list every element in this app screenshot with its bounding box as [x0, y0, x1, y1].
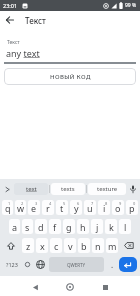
- button[interactable]: h: [77, 219, 89, 234]
- staticText: 7: [91, 201, 94, 206]
- staticText: o: [115, 202, 121, 214]
- staticText: 6: [77, 201, 80, 206]
- button[interactable]: p: [126, 200, 138, 215]
- staticText: l: [124, 221, 127, 233]
- button[interactable]: z: [22, 238, 34, 253]
- staticText: i: [103, 202, 106, 214]
- button[interactable]: m: [106, 238, 118, 253]
- staticText: p: [129, 202, 135, 214]
- staticText: h: [80, 221, 86, 233]
- staticText: 8: [105, 201, 108, 206]
- staticText: a: [12, 221, 18, 233]
- button[interactable]: [119, 257, 137, 272]
- staticText: 1: [8, 201, 11, 206]
- button[interactable]: r: [42, 200, 54, 215]
- button[interactable]: c: [50, 238, 62, 253]
- staticText: y: [74, 202, 79, 214]
- button[interactable]: w: [15, 200, 26, 215]
- staticText: r: [46, 202, 50, 214]
- staticText: d: [38, 221, 44, 233]
- button[interactable]: o: [112, 200, 124, 215]
- staticText: g: [66, 221, 72, 233]
- staticText: .: [111, 259, 114, 270]
- staticText: u: [87, 202, 93, 214]
- button[interactable]: g: [63, 219, 75, 234]
- button[interactable]: n: [92, 238, 104, 253]
- button[interactable]: ?123: [2, 255, 21, 274]
- staticText: c: [54, 240, 59, 252]
- button[interactable]: t: [56, 200, 68, 215]
- button[interactable]: [63, 280, 77, 294]
- staticText: Текст: [7, 39, 20, 46]
- staticText: k: [109, 221, 114, 233]
- button[interactable]: QWERTY: [49, 257, 104, 272]
- button[interactable]: b: [78, 238, 90, 253]
- staticText: 0: [133, 201, 136, 206]
- staticText: ?123: [6, 261, 18, 268]
- button[interactable]: any text: [6, 47, 40, 59]
- staticText: t: [60, 202, 64, 214]
- button[interactable]: k: [105, 219, 117, 234]
- staticText: 5: [63, 201, 66, 206]
- staticText: f: [53, 221, 57, 233]
- staticText: Текст: [25, 15, 46, 26]
- button[interactable]: f: [49, 219, 61, 234]
- button[interactable]: [119, 236, 139, 255]
- button[interactable]: НОВЫЙ КОД: [4, 68, 136, 85]
- button[interactable]: u: [84, 200, 96, 215]
- staticText: 23:01: [3, 2, 18, 9]
- staticText: 4: [49, 201, 52, 206]
- button[interactable]: [34, 255, 47, 274]
- button[interactable]: texts: [51, 183, 85, 195]
- button[interactable]: a: [9, 219, 20, 234]
- button[interactable]: l: [119, 219, 131, 234]
- staticText: n: [95, 240, 101, 252]
- staticText: 99 %: [125, 2, 137, 9]
- staticText: 9: [119, 201, 122, 206]
- button[interactable]: e: [28, 200, 40, 215]
- button[interactable]: .: [106, 255, 119, 274]
- staticText: text: [26, 185, 37, 193]
- staticText: w: [17, 202, 25, 214]
- staticText: 2: [21, 201, 24, 206]
- button[interactable]: [1, 183, 13, 195]
- staticText: z: [26, 240, 31, 252]
- staticText: j: [96, 221, 99, 233]
- button[interactable]: s: [22, 219, 33, 234]
- staticText: e: [31, 202, 37, 214]
- button[interactable]: v: [64, 238, 76, 253]
- staticText: q: [5, 202, 11, 214]
- staticText: x: [40, 240, 45, 252]
- button[interactable]: q: [2, 200, 13, 215]
- staticText: НОВЫЙ КОД: [50, 73, 91, 81]
- button[interactable]: d: [35, 219, 47, 234]
- staticText: v: [68, 240, 73, 252]
- button[interactable]: text: [14, 183, 48, 195]
- staticText: b: [81, 240, 87, 252]
- button[interactable]: y: [70, 200, 82, 215]
- staticText: texture: [97, 185, 118, 193]
- staticText: s: [25, 221, 30, 233]
- staticText: m: [108, 240, 117, 252]
- button[interactable]: [98, 280, 112, 294]
- staticText: 3: [35, 201, 38, 206]
- button[interactable]: [21, 255, 34, 274]
- button[interactable]: i: [98, 200, 110, 215]
- staticText: texts: [61, 185, 75, 193]
- button[interactable]: [28, 280, 42, 294]
- button[interactable]: j: [91, 219, 103, 234]
- staticText: QWERTY: [67, 262, 86, 268]
- button[interactable]: [126, 183, 139, 196]
- button[interactable]: x: [36, 238, 48, 253]
- button[interactable]: [1, 236, 21, 255]
- button[interactable]: [1, 11, 19, 29]
- button[interactable]: texture: [88, 183, 126, 195]
